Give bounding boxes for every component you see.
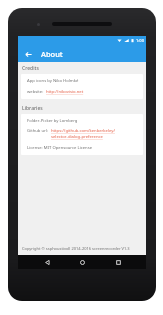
staticText: About — [41, 49, 63, 59]
button[interactable]: Recent apps — [111, 255, 125, 269]
staticText: selector-dialog-preference — [51, 134, 103, 140]
staticText: Github url: — [27, 128, 51, 134]
button[interactable]: Back — [22, 48, 34, 60]
staticText: https://github.com/kenberkeley/ — [51, 128, 115, 134]
staticText: License: MIT Opensource License — [27, 145, 93, 151]
staticText: website: — [27, 89, 46, 95]
staticText: Folder-Picker by Lomberg — [27, 118, 78, 124]
staticText: Credits — [22, 65, 39, 72]
button[interactable]: http://nikovisio.net — [46, 89, 84, 95]
staticText: App icons by Niko Holmké — [27, 78, 79, 84]
button[interactable]: Home — [75, 255, 89, 269]
button[interactable]: Back — [40, 255, 54, 269]
button[interactable]: App icons by Niko Holmké — [21, 74, 143, 99]
button[interactable]: https://github.com/kenberkeley/ — [51, 128, 115, 140]
staticText: Libraries — [22, 105, 43, 112]
staticText: 1:00 — [136, 38, 144, 43]
staticText: Copyright © ssphoustivoll 2014-2016 scre… — [22, 246, 130, 251]
button[interactable]: Folder-Picker by Lomberg — [21, 114, 143, 155]
